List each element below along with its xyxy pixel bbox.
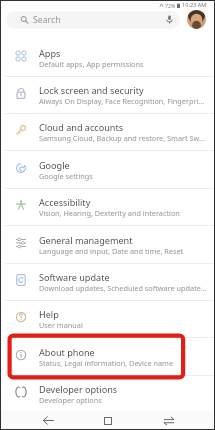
button[interactable]: General management	[0, 227, 215, 264]
button[interactable]: Google	[0, 152, 215, 189]
staticText: Apps	[39, 47, 61, 59]
staticText: Vision, Hearing, Dexterity and interacti…	[39, 208, 180, 218]
staticText: Default apps, App permissions	[39, 59, 144, 69]
button[interactable]: Apps	[0, 40, 215, 77]
staticText: Google	[39, 159, 70, 171]
staticText: Developer options	[39, 395, 102, 405]
staticText: Lock screen and security	[39, 84, 144, 96]
button[interactable]: Software update	[0, 264, 215, 301]
staticText: Software update	[39, 271, 110, 283]
button[interactable]: Accessibility	[0, 189, 215, 226]
staticText: 72%	[165, 2, 176, 9]
staticText: Always On Display, Face Recognition, Fin…	[39, 96, 205, 106]
staticText: 10:23 AM	[182, 1, 207, 9]
button[interactable]: Help	[0, 301, 215, 338]
staticText: Status, Legal information, Device name	[39, 358, 174, 368]
button[interactable]: Lock screen and security	[0, 77, 215, 114]
staticText: Google settings	[39, 171, 93, 181]
button[interactable]: Voice search	[163, 13, 176, 26]
button[interactable]: Cloud and accounts	[0, 114, 215, 151]
staticText: Language and input, Date and time, Reset	[39, 246, 184, 256]
button[interactable]: Home	[93, 411, 123, 430]
button[interactable]: Back	[33, 411, 63, 430]
staticText: Help	[39, 308, 59, 320]
staticText: General management	[39, 234, 133, 246]
staticText: Accessibility	[39, 196, 91, 208]
staticText: User manual	[39, 320, 83, 330]
staticText: Search	[33, 14, 61, 26]
button[interactable]: Search	[6, 11, 180, 29]
staticText: Samsung Cloud, Backup and restore, Smart…	[39, 133, 205, 143]
button[interactable]: Profile	[187, 10, 206, 29]
staticText: Download updates, Scheduled software upd…	[39, 283, 207, 293]
staticText: Developer options	[39, 383, 118, 395]
staticText: Cloud and accounts	[39, 121, 124, 133]
button[interactable]: Recent apps	[154, 411, 184, 430]
button[interactable]: Developer options	[0, 376, 215, 413]
staticText: About phone	[39, 346, 95, 358]
button[interactable]: About phone	[0, 339, 215, 376]
